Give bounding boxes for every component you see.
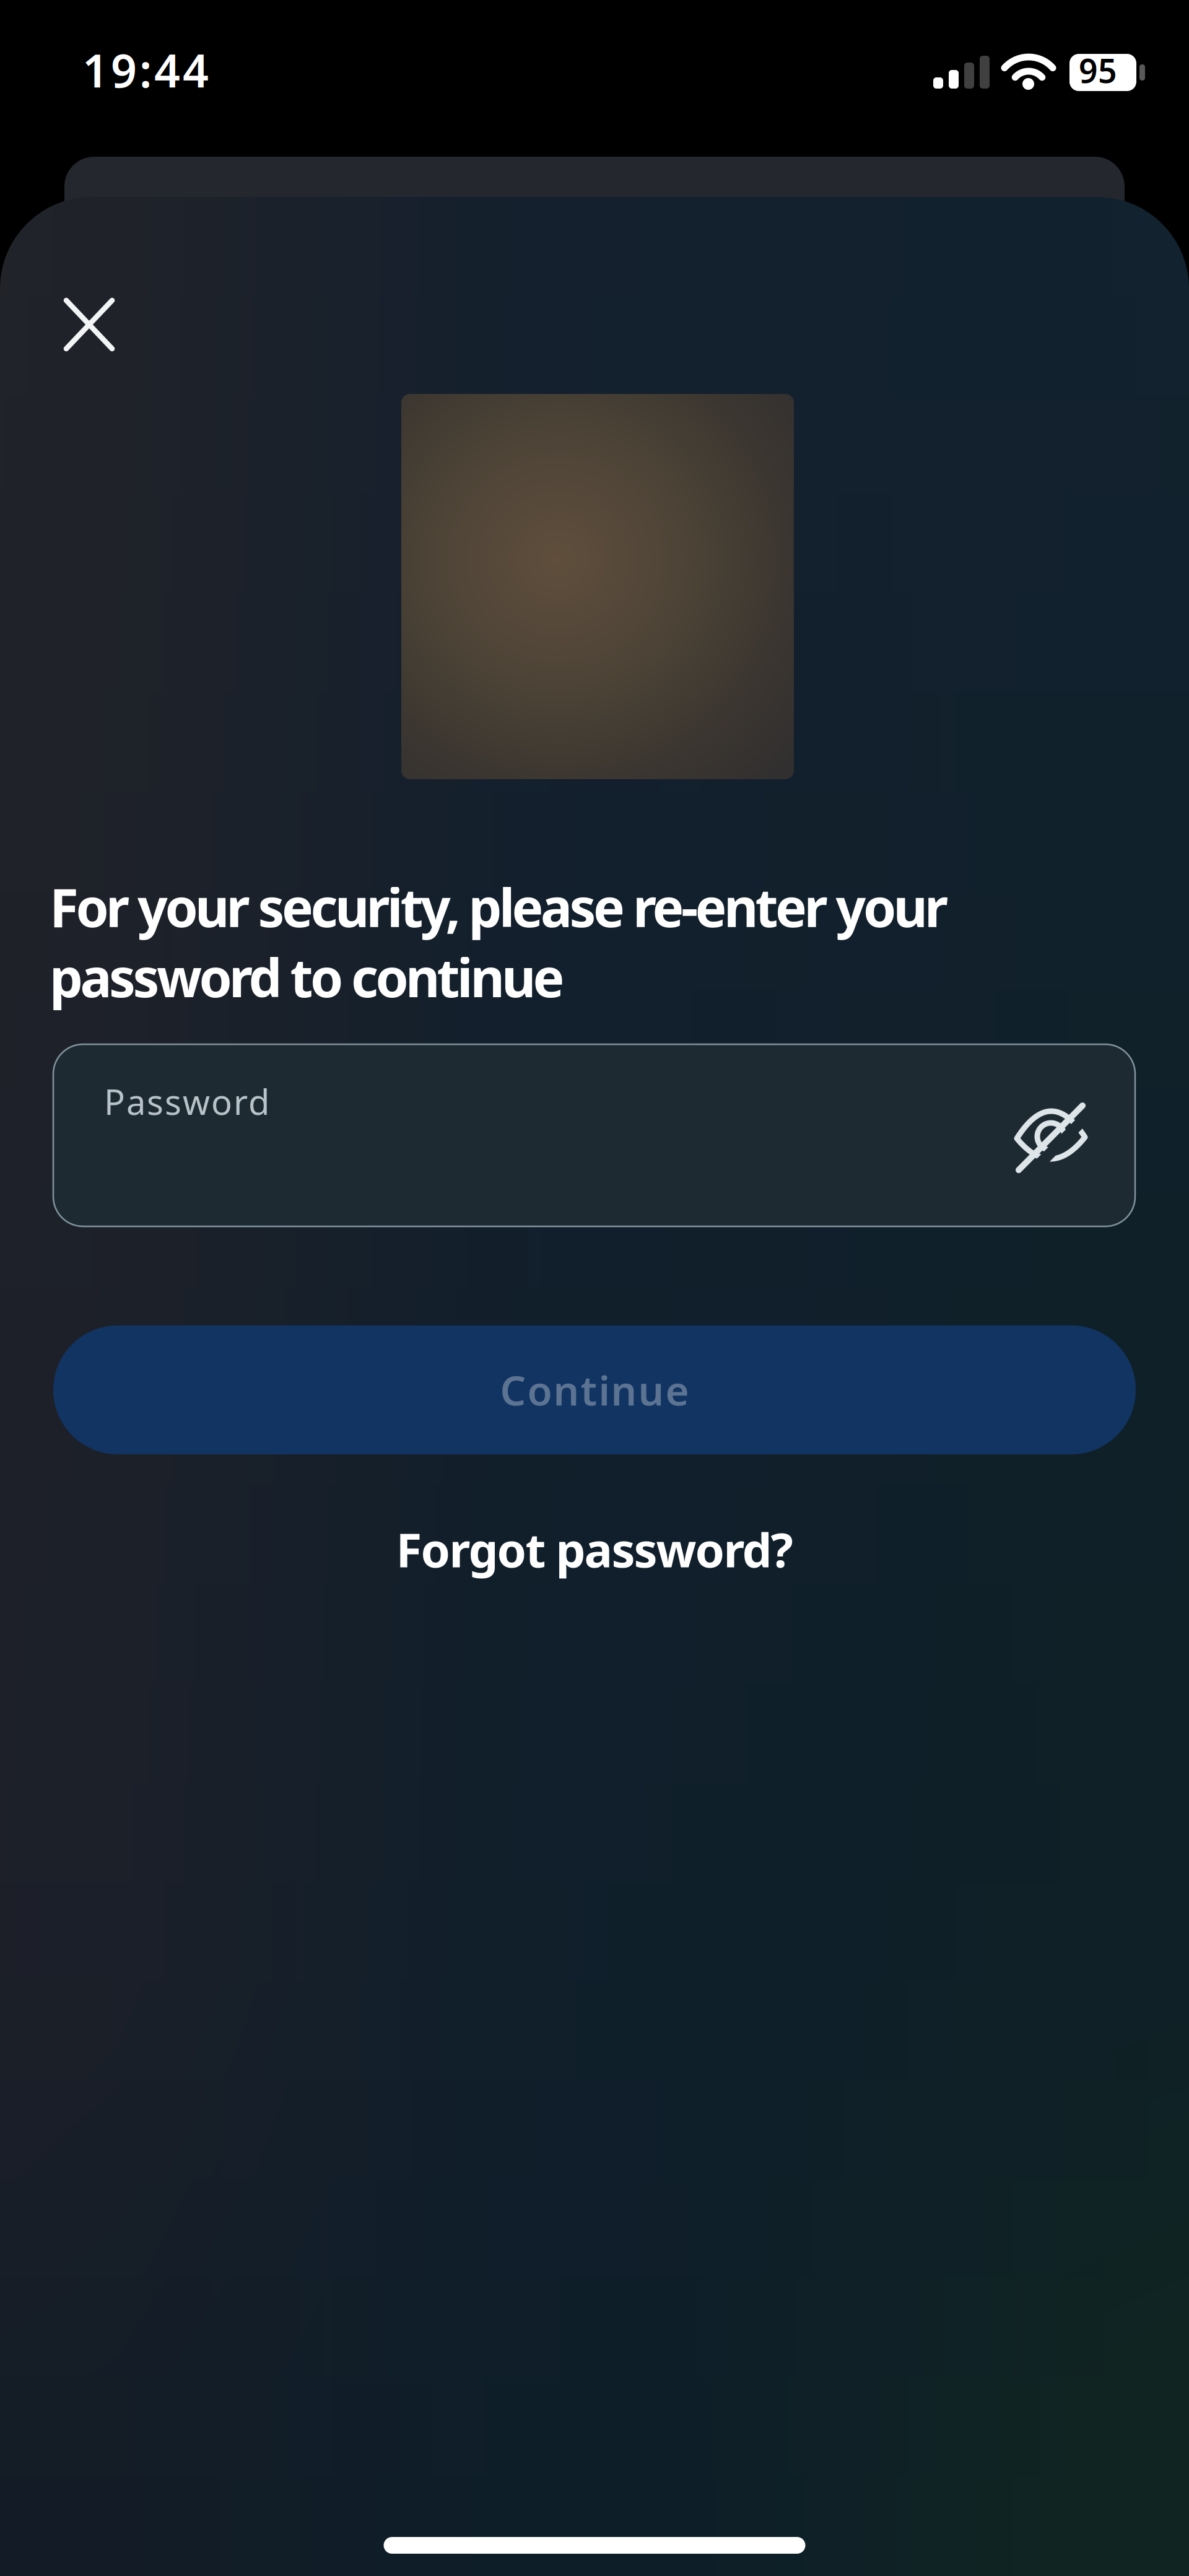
button[interactable] [1014,1101,1089,1176]
staticText: 95 [1079,48,1117,92]
button[interactable]: Forgot password? [396,1518,793,1580]
button[interactable]: Continue [53,1325,1136,1454]
staticText: Forgot password? [396,1518,793,1580]
staticText: Continue [500,1363,689,1417]
staticText: Password [104,1078,269,1124]
staticText: For your security, please re-enter your … [50,871,948,1012]
button[interactable] [46,281,133,368]
staticText: 19:44 [82,40,209,100]
